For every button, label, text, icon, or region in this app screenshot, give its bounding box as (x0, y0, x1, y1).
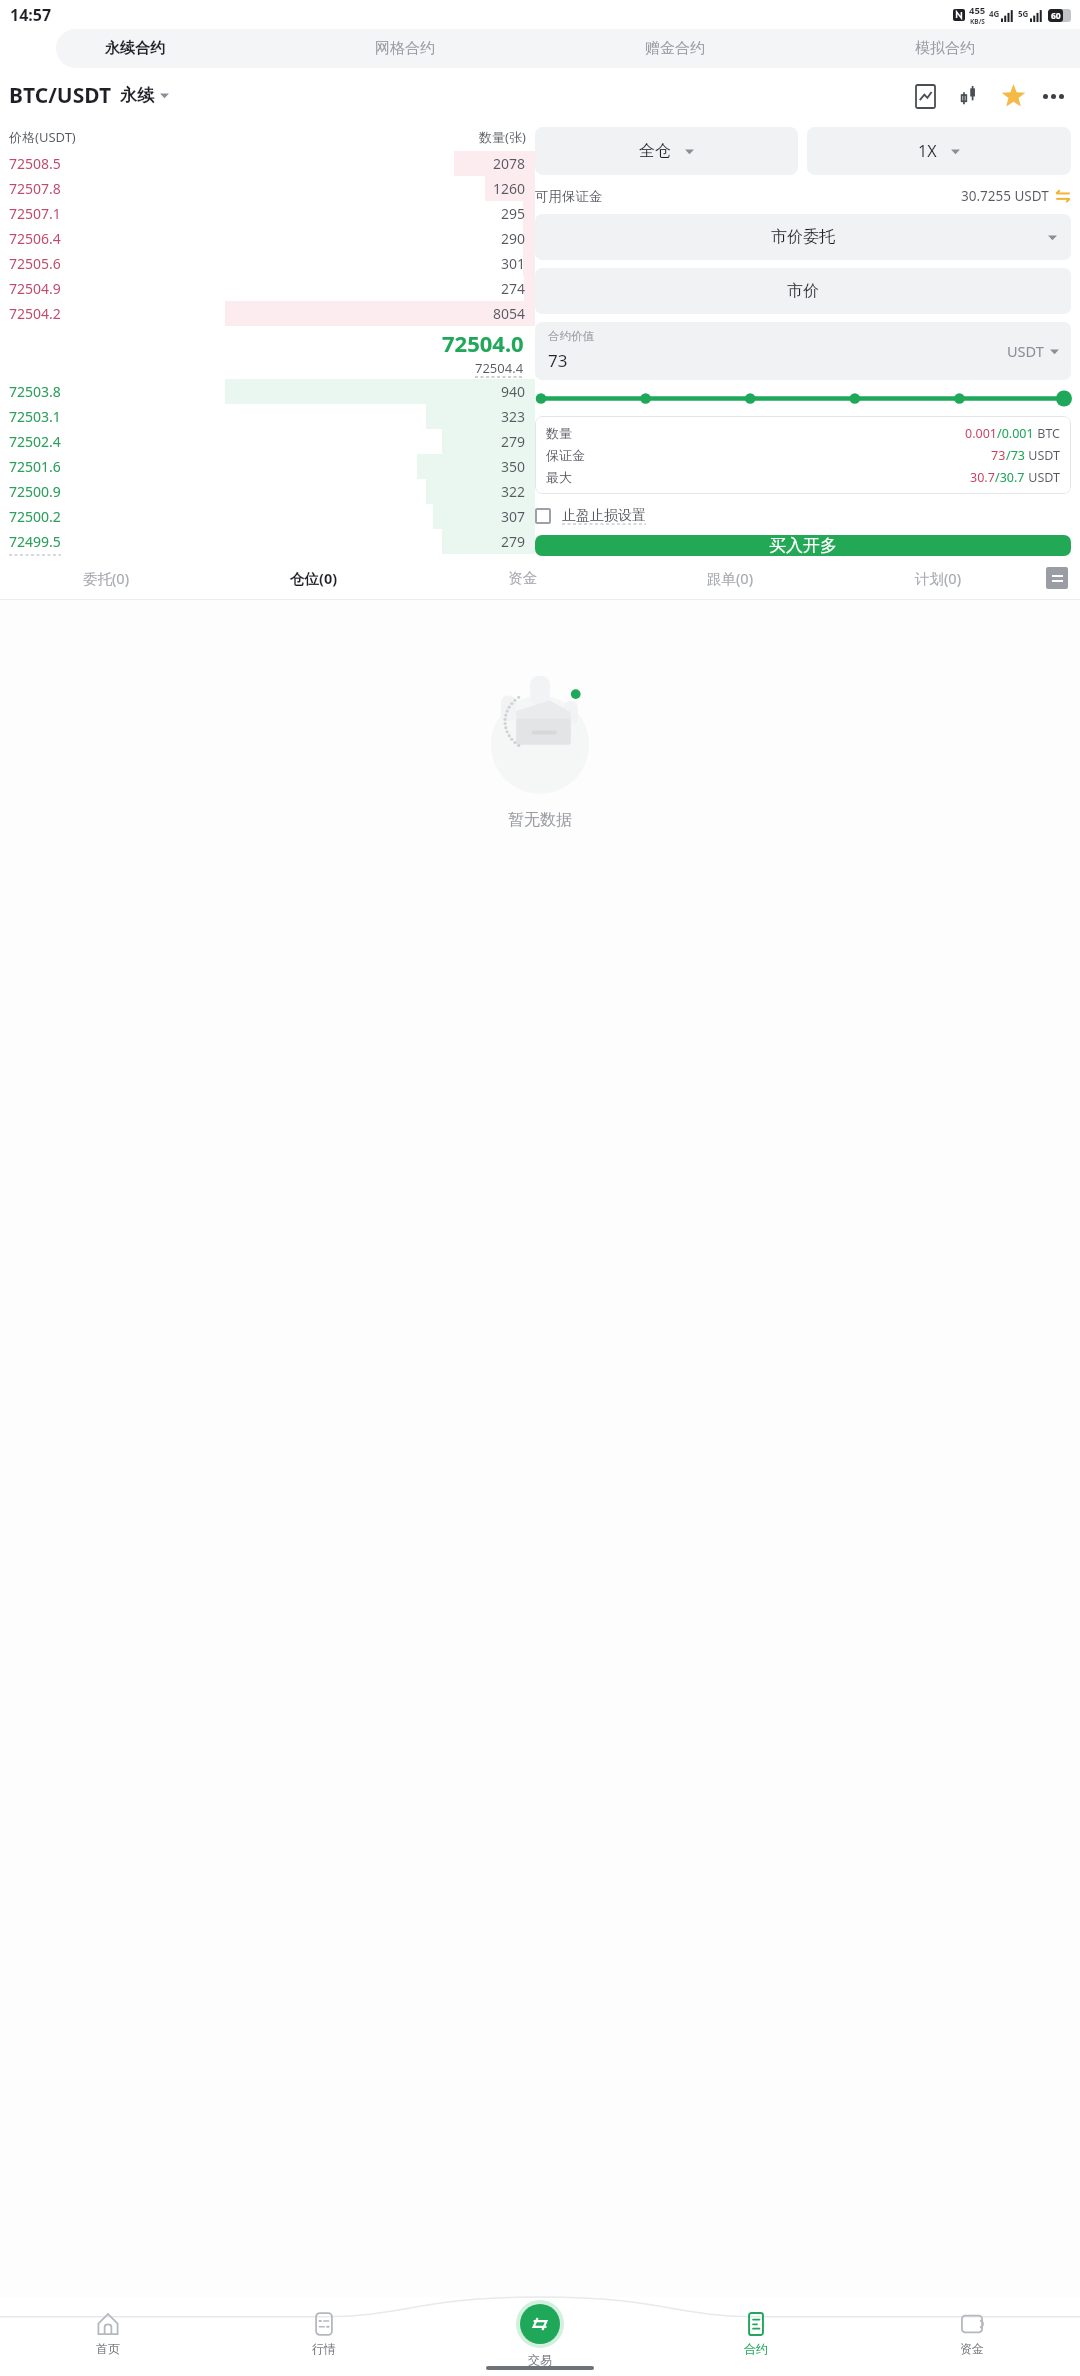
button[interactable]: 72499.5 (0, 529, 535, 554)
button[interactable]: 全仓 (535, 127, 798, 175)
staticText: 数量 (546, 425, 572, 441)
button[interactable]: 仓位(0) (210, 556, 418, 599)
button[interactable]: 1X (807, 127, 1071, 175)
button[interactable] (535, 390, 1071, 407)
staticText: 数量(张) (479, 128, 526, 146)
staticText: USDT (1025, 469, 1060, 486)
button[interactable]: 72500.9 (0, 479, 535, 504)
button[interactable]: 赠金合约 (540, 29, 810, 68)
staticText: 赠金合约 (645, 39, 705, 58)
staticText: 72500.2 (9, 507, 61, 526)
staticText: 72507.1 (9, 204, 61, 223)
button[interactable]: Filter (1042, 556, 1072, 599)
staticText: 290 (501, 229, 526, 248)
button[interactable]: 计划(0) (834, 556, 1042, 599)
button[interactable]: 72500.2 (0, 504, 535, 529)
button[interactable]: Line chart (907, 78, 943, 114)
staticText: 委托(0) (83, 568, 129, 588)
staticText: 72507.8 (9, 179, 61, 198)
button[interactable]: More options (1035, 78, 1071, 114)
button[interactable]: 买入开多 (535, 535, 1071, 556)
staticText: 行情 (312, 2341, 336, 2356)
button[interactable]: 市价 (535, 268, 1071, 314)
staticText: 5G (1018, 8, 1029, 19)
staticText: 72501.6 (9, 457, 61, 476)
button[interactable]: 72503.8 (0, 379, 535, 404)
staticText: 0.001 (965, 425, 997, 442)
staticText: /0.001 (997, 425, 1034, 442)
button[interactable]: 网格合约 (270, 29, 540, 68)
button[interactable]: 72503.1 (0, 404, 535, 429)
button[interactable]: 合约价值 (535, 322, 1071, 380)
staticText: 30.7 (970, 469, 995, 486)
staticText: 323 (501, 407, 526, 426)
button[interactable]: 模拟合约 (810, 29, 1080, 68)
button[interactable]: 行情 (216, 2312, 432, 2356)
staticText: 322 (501, 482, 526, 501)
staticText: 跟单(0) (707, 568, 753, 588)
button[interactable]: 72504.2 (0, 301, 535, 326)
staticText: 295 (501, 204, 526, 223)
staticText: 72503.8 (9, 382, 61, 401)
button[interactable]: Candlestick chart (951, 78, 987, 114)
staticText: 72504.2 (9, 304, 61, 323)
button[interactable]: 跟单(0) (626, 556, 834, 599)
button[interactable]: 资金 (864, 2312, 1080, 2356)
staticText: 72506.4 (9, 229, 61, 248)
button[interactable]: 市价委托 (535, 214, 1071, 260)
staticText: 72508.5 (9, 154, 61, 173)
staticText: 市价 (787, 281, 819, 301)
staticText: 72504.4 (475, 359, 524, 377)
staticText: 30.7255 USDT (961, 187, 1049, 205)
button[interactable]: 72505.6 (0, 251, 535, 276)
staticText: USDT (1007, 341, 1044, 361)
button[interactable]: 可用保证金 (535, 183, 1071, 209)
staticText: 价格(USDT) (9, 128, 76, 146)
staticText: 永续 (120, 85, 154, 106)
staticText: 模拟合约 (915, 39, 975, 58)
staticText: 72504.0 (442, 328, 524, 358)
button[interactable]: 资金 (418, 556, 626, 599)
button[interactable]: 首页 (0, 2312, 216, 2356)
staticText: 301 (501, 254, 526, 273)
staticText: 止盈止损设置 (562, 507, 646, 525)
staticText: 最大 (546, 469, 572, 485)
staticText: /30.7 (995, 469, 1025, 486)
staticText: 网格合约 (375, 39, 435, 58)
button[interactable]: 72502.4 (0, 429, 535, 454)
staticText: 72505.6 (9, 254, 61, 273)
button[interactable]: 72501.6 (0, 454, 535, 479)
staticText: 72500.9 (9, 482, 61, 501)
staticText: 73 (991, 447, 1006, 464)
button[interactable]: 永续合约 (0, 29, 270, 68)
staticText: 274 (501, 279, 526, 298)
staticText: 资金 (508, 569, 537, 587)
staticText: BTC/USDT (9, 81, 112, 110)
button[interactable]: 72507.1 (0, 201, 535, 226)
button[interactable]: Favorite (995, 78, 1031, 114)
staticText: 合约 (744, 2341, 768, 2356)
button[interactable]: BTC/USDT (9, 81, 169, 110)
staticText: 交易 (528, 2352, 552, 2367)
staticText: 307 (501, 507, 526, 526)
button[interactable]: 72506.4 (0, 226, 535, 251)
button[interactable]: 止盈止损设置 (535, 503, 1071, 529)
staticText: 永续合约 (105, 39, 165, 58)
staticText: USDT (1025, 447, 1060, 464)
button[interactable]: 72504.9 (0, 276, 535, 301)
staticText: 60 (1051, 10, 1061, 22)
staticText: 合约价值 (548, 329, 594, 343)
staticText: 73 (548, 349, 568, 372)
staticText: 8054 (493, 304, 526, 323)
button[interactable]: 委托(0) (2, 556, 210, 599)
staticText: 72499.5 (9, 532, 61, 551)
button[interactable]: 72507.8 (0, 176, 535, 201)
staticText: 1260 (493, 179, 526, 198)
staticText: 资金 (960, 2341, 984, 2356)
button[interactable]: 72508.5 (0, 151, 535, 176)
staticText: 计划(0) (915, 568, 961, 588)
staticText: 279 (501, 432, 526, 451)
button[interactable]: 合约 (648, 2312, 864, 2356)
button[interactable]: Trade (520, 2304, 560, 2344)
staticText: KB/S (970, 17, 985, 26)
